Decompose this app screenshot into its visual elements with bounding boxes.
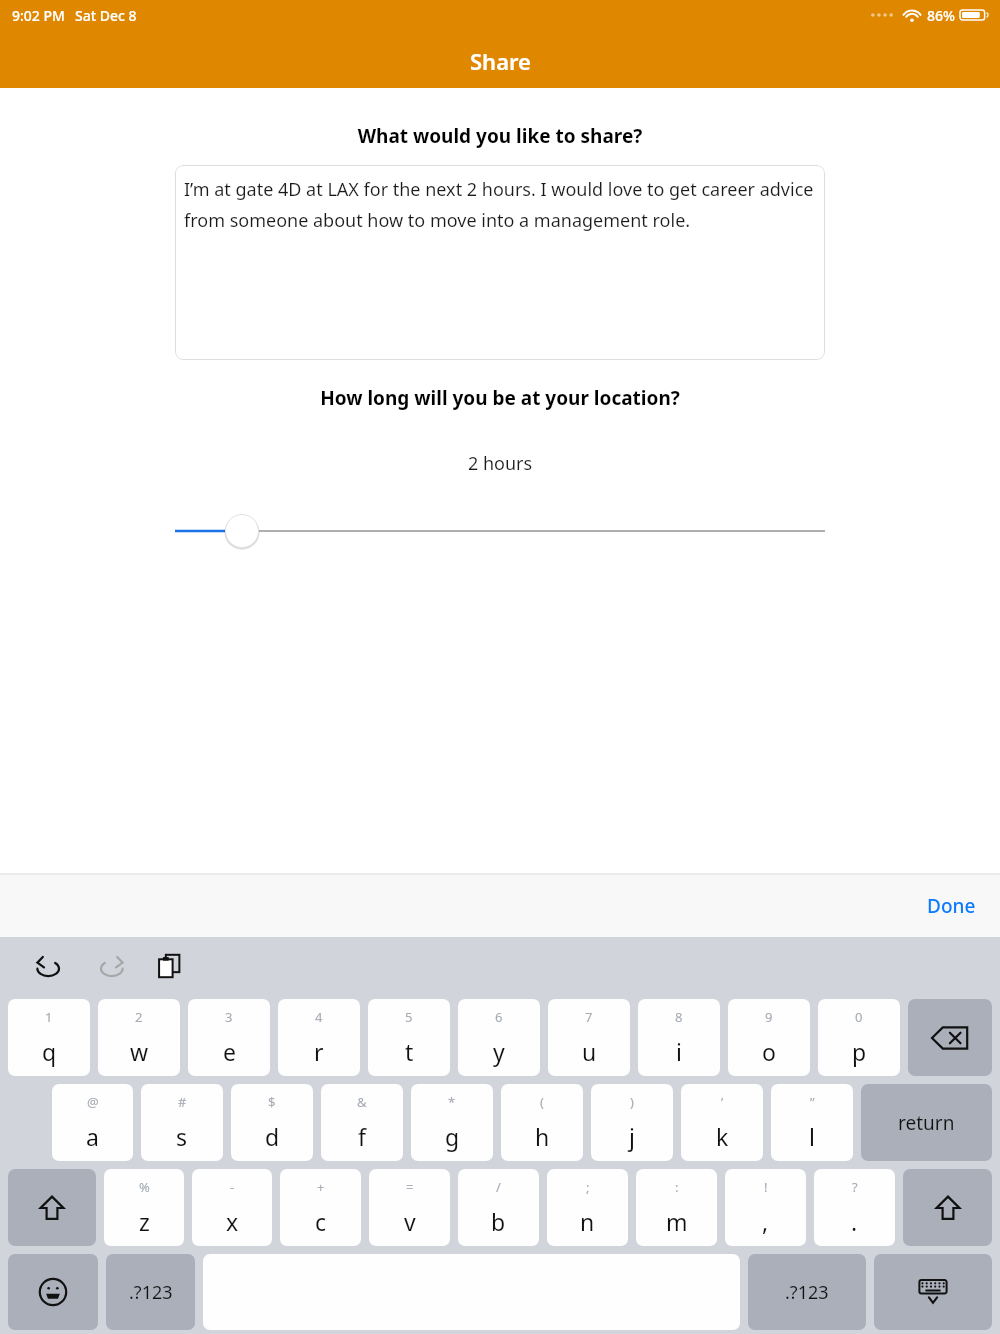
staticText: n (580, 1206, 595, 1237)
staticText: 0 (855, 1008, 863, 1026)
staticText: s (176, 1121, 188, 1152)
staticText: z (139, 1206, 150, 1237)
button[interactable]: I’m at gate 4D at LAX for the next 2 hou… (175, 165, 825, 360)
staticText: k (716, 1121, 729, 1152)
button[interactable]: ? (814, 1169, 895, 1246)
button[interactable]: Redo (88, 944, 132, 988)
button[interactable]: 2 (98, 999, 180, 1076)
staticText: ’ (721, 1093, 724, 1111)
button[interactable]: # (141, 1084, 223, 1161)
button[interactable]: Paste (148, 944, 192, 988)
staticText: / (496, 1178, 501, 1196)
staticText: p (852, 1036, 867, 1067)
button[interactable]: Shift (8, 1169, 96, 1246)
staticText: ; (586, 1178, 590, 1196)
staticText: What would you like to share? (0, 123, 1000, 149)
button[interactable]: / (458, 1169, 539, 1246)
staticText: - (230, 1178, 235, 1196)
button[interactable]: % (104, 1169, 184, 1246)
staticText: ? (852, 1178, 858, 1196)
staticText: h (535, 1121, 550, 1152)
staticText: . (851, 1206, 858, 1237)
button[interactable]: 9 (728, 999, 810, 1076)
staticText: Sat Dec 8 (75, 6, 137, 25)
button[interactable]: Shift (903, 1169, 992, 1246)
button[interactable]: 5 (368, 999, 450, 1076)
button[interactable]: 6 (458, 999, 540, 1076)
staticText: m (666, 1206, 688, 1237)
staticText: 2 hours (0, 451, 1000, 476)
staticText: u (582, 1036, 597, 1067)
button[interactable]: ! (725, 1169, 806, 1246)
button[interactable]: Backspace (908, 999, 992, 1076)
staticText: 86% (927, 6, 955, 25)
button[interactable]: ’ (681, 1084, 763, 1161)
staticText: * (448, 1093, 456, 1111)
button[interactable]: ( (501, 1084, 583, 1161)
button[interactable]: ” (771, 1084, 853, 1161)
button[interactable]: .?123 (748, 1254, 866, 1330)
staticText: % (139, 1178, 150, 1196)
staticText: r (314, 1036, 324, 1067)
button[interactable]: 7 (548, 999, 630, 1076)
staticText: & (357, 1093, 367, 1111)
button[interactable]: 4 (278, 999, 360, 1076)
staticText: 2 (135, 1008, 143, 1026)
button[interactable]: = (369, 1169, 450, 1246)
staticText: f (358, 1121, 366, 1152)
staticText: 9:02 PM (12, 6, 65, 25)
button[interactable]: Emoji (8, 1254, 98, 1330)
staticText: .?123 (785, 1280, 829, 1305)
staticText: v (404, 1206, 416, 1237)
staticText: l (809, 1121, 815, 1152)
staticText: w (130, 1036, 149, 1067)
button[interactable]: Duration slider (0, 509, 1000, 553)
staticText: How long will you be at your location? (0, 385, 1000, 411)
button[interactable]: Undo (28, 944, 72, 988)
staticText: 8 (675, 1008, 683, 1026)
staticText: y (493, 1036, 505, 1067)
staticText: 6 (495, 1008, 503, 1026)
button[interactable]: 3 (188, 999, 270, 1076)
button[interactable]: & (321, 1084, 403, 1161)
staticText: : (675, 1178, 679, 1196)
button[interactable]: ) (591, 1084, 673, 1161)
staticText: x (226, 1206, 239, 1237)
staticText: j (629, 1121, 635, 1152)
button[interactable]: Done (915, 885, 988, 927)
staticText: o (762, 1036, 776, 1067)
staticText: $ (268, 1093, 276, 1111)
staticText: g (445, 1121, 460, 1152)
button[interactable]: .?123 (106, 1254, 195, 1330)
button[interactable]: * (411, 1084, 493, 1161)
button[interactable]: return (861, 1084, 992, 1161)
staticText: Share (470, 46, 531, 76)
staticText: t (405, 1036, 414, 1067)
staticText: d (265, 1121, 280, 1152)
staticText: 5 (405, 1008, 413, 1026)
staticText: c (315, 1206, 327, 1237)
staticText: a (86, 1121, 99, 1152)
staticText: Done (927, 893, 976, 919)
button[interactable]: : (636, 1169, 717, 1246)
button[interactable]: ; (547, 1169, 628, 1246)
button[interactable]: 0 (818, 999, 900, 1076)
button[interactable]: Hide keyboard (874, 1254, 992, 1330)
staticText: = (406, 1178, 414, 1196)
staticText: ! (764, 1178, 768, 1196)
staticText: b (491, 1206, 506, 1237)
staticText: I’m at gate 4D at LAX for the next 2 hou… (184, 177, 816, 232)
button[interactable]: - (192, 1169, 272, 1246)
button[interactable]: + (280, 1169, 361, 1246)
staticText: , (762, 1206, 769, 1237)
button[interactable]: 8 (638, 999, 720, 1076)
staticText: i (676, 1036, 682, 1067)
staticText: ) (630, 1093, 634, 1111)
staticText: 4 (315, 1008, 323, 1026)
staticText: 1 (45, 1008, 53, 1026)
button[interactable]: @ (52, 1084, 133, 1161)
button[interactable]: 1 (8, 999, 90, 1076)
staticText: + (317, 1178, 325, 1196)
button[interactable]: $ (231, 1084, 313, 1161)
